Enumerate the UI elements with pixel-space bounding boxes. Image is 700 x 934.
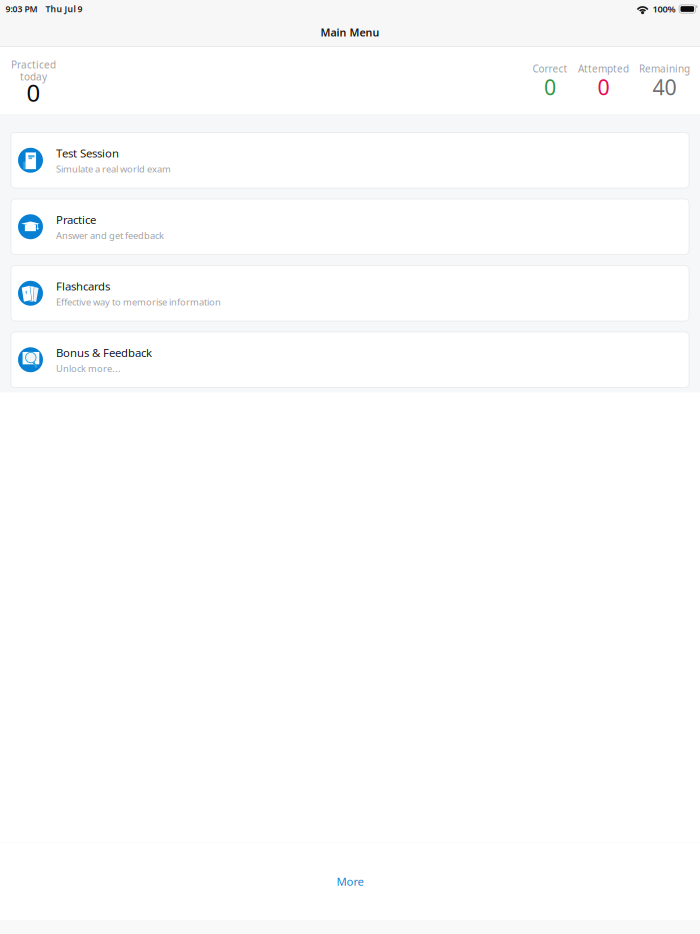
button[interactable]: Bonus & Feedback <box>11 332 689 387</box>
staticText: Practiced <box>11 58 56 71</box>
staticText: Test Session <box>56 145 119 160</box>
staticText: Bonus & Feedback <box>56 345 152 360</box>
button[interactable]: Flashcards <box>11 265 689 321</box>
button[interactable]: Practice <box>11 199 689 254</box>
staticText: Remaining <box>639 62 690 75</box>
staticText: Answer and get feedback <box>56 229 164 241</box>
staticText: 9:03 PM <box>5 3 37 15</box>
staticText: 40 <box>652 73 676 101</box>
staticText: More <box>336 874 363 889</box>
staticText: Correct <box>532 62 567 75</box>
staticText: 0 <box>544 73 556 101</box>
staticText: Effective way to memorise information <box>56 296 221 308</box>
staticText: Unlock more... <box>56 362 121 374</box>
staticText: Main Menu <box>320 25 379 39</box>
staticText: 100% <box>653 3 676 15</box>
staticText: 0 <box>597 73 609 101</box>
staticText: Thu Jul 9 <box>45 3 82 15</box>
staticText: Practice <box>56 212 96 227</box>
staticText: Simulate a real world exam <box>56 163 171 175</box>
button[interactable]: Test Session <box>11 132 689 188</box>
button[interactable]: More <box>0 842 700 920</box>
staticText: 0 <box>26 77 40 108</box>
staticText: Attempted <box>578 62 629 75</box>
staticText: today <box>20 70 47 83</box>
staticText: Flashcards <box>56 278 110 293</box>
